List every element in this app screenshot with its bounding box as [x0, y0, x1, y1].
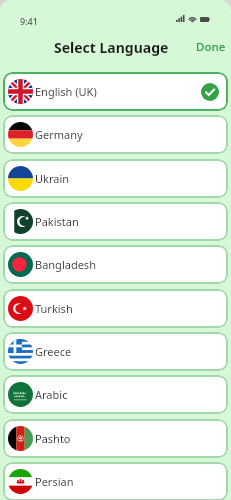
button[interactable]: Pashto [3, 419, 228, 458]
button[interactable]: Arabic [3, 375, 228, 414]
button[interactable]: Turkish [3, 289, 228, 328]
button[interactable]: Pakistan [3, 202, 228, 241]
staticText: Ukrain [35, 171, 70, 186]
staticText: Germany [35, 127, 83, 142]
staticText: Pakistan [35, 214, 79, 229]
staticText: Bangladesh [35, 257, 96, 272]
button[interactable]: Persian [3, 462, 228, 500]
staticText: Select Language [54, 38, 169, 57]
button[interactable]: English (UK) [3, 72, 228, 111]
staticText: Arabic [35, 387, 68, 402]
button[interactable]: Germany [3, 115, 228, 154]
staticText: Greece [35, 344, 72, 359]
button[interactable]: Ukrain [3, 159, 228, 198]
staticText: Persian [35, 474, 74, 489]
other: Selected [201, 83, 219, 101]
button[interactable]: Greece [3, 332, 228, 371]
staticText: Turkish [35, 301, 73, 316]
staticText: English (UK) [35, 84, 97, 99]
button[interactable]: Done [190, 33, 231, 61]
button[interactable]: Bangladesh [3, 245, 228, 284]
staticText: Done [196, 39, 226, 55]
staticText: Pashto [35, 431, 71, 446]
staticText: 9:41 [20, 15, 38, 27]
